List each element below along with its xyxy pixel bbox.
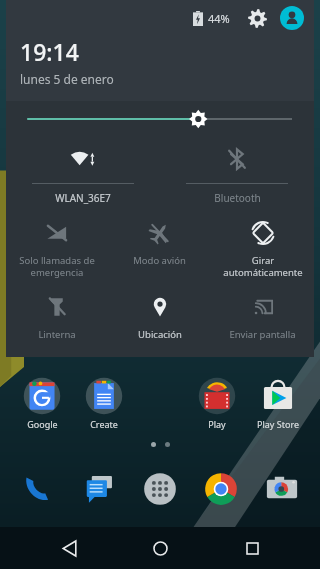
staticText: Play bbox=[208, 418, 226, 430]
staticText: Enviar pantalla bbox=[229, 328, 296, 341]
button[interactable]: Flashlight bbox=[6, 293, 108, 341]
staticText: WLAN_36E7 bbox=[55, 191, 111, 205]
staticText: Linterna bbox=[38, 328, 76, 341]
staticText: 44% bbox=[208, 11, 230, 26]
staticText: Solo llamadas de emergencia bbox=[19, 254, 95, 279]
button[interactable]: Airplane mode bbox=[108, 219, 211, 267]
staticText: Create bbox=[90, 418, 118, 430]
button[interactable]: Home bbox=[137, 527, 183, 569]
button[interactable]: Camera bbox=[258, 465, 306, 513]
staticText: Girar automáticamente bbox=[223, 254, 303, 279]
button[interactable]: All apps bbox=[136, 465, 184, 513]
staticText: Play Store bbox=[257, 418, 299, 430]
staticText: Google bbox=[27, 418, 58, 430]
button[interactable]: Messages bbox=[75, 465, 123, 513]
button[interactable]: Auto rotate bbox=[211, 219, 314, 279]
staticText: 19:14 bbox=[20, 36, 79, 67]
button[interactable]: User profile bbox=[280, 6, 304, 30]
button[interactable]: Create bbox=[76, 377, 132, 430]
staticText: Modo avión bbox=[133, 254, 186, 267]
button[interactable]: Google bbox=[14, 377, 70, 430]
button[interactable]: Settings bbox=[244, 5, 270, 31]
button[interactable]: Wi-Fi bbox=[6, 143, 160, 205]
button[interactable]: Play bbox=[189, 377, 245, 430]
staticText: Ubicación bbox=[138, 328, 182, 341]
button[interactable]: Play Store bbox=[250, 377, 306, 430]
button[interactable]: Location bbox=[108, 293, 211, 341]
button[interactable]: Back bbox=[46, 527, 92, 569]
button[interactable]: Phone bbox=[14, 465, 62, 513]
button[interactable]: Bluetooth bbox=[160, 143, 314, 205]
staticText: lunes 5 de enero bbox=[20, 71, 114, 87]
button[interactable]: Chrome bbox=[197, 465, 245, 513]
button[interactable]: Cast screen bbox=[211, 293, 314, 341]
button[interactable]: Brightness bbox=[28, 101, 292, 137]
button[interactable]: Emergency calls only bbox=[6, 219, 108, 279]
staticText: Bluetooth bbox=[214, 191, 261, 205]
button[interactable]: Recents bbox=[229, 527, 275, 569]
